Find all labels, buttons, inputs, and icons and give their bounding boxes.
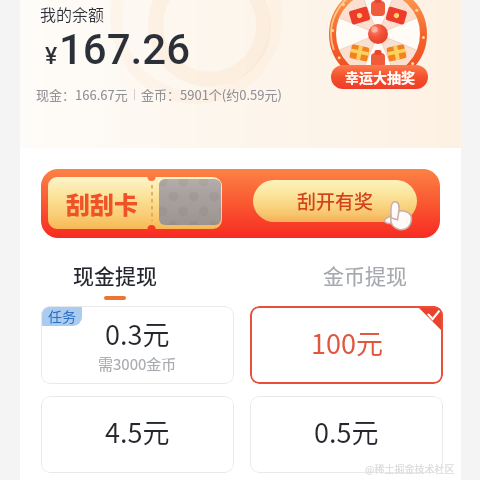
button[interactable]: 现金提现	[65, 260, 165, 300]
staticText: 刮开有奖	[297, 187, 374, 215]
button[interactable]: 刮开有奖	[253, 180, 417, 222]
other: 点击	[384, 200, 412, 230]
button[interactable]: 金币提现	[315, 260, 415, 296]
staticText: 任务	[48, 306, 76, 326]
button[interactable]: 100元	[250, 306, 443, 384]
button[interactable]: 0.5元	[250, 396, 443, 473]
button[interactable]: 刮刮卡	[41, 169, 440, 238]
staticText: 幸运大抽奖	[345, 67, 415, 87]
staticText: 金币：5901个(约0.59元)	[141, 85, 282, 104]
button[interactable]: 幸运大抽奖	[329, 0, 429, 89]
staticText: 现金提现	[73, 260, 157, 290]
staticText: 167.26	[59, 25, 191, 74]
staticText: 我的余额	[40, 2, 105, 25]
staticText: 现金：166.67元	[36, 85, 128, 104]
button[interactable]: 0.3元	[41, 306, 234, 384]
staticText: 金币提现	[323, 260, 407, 290]
staticText: 4.5元	[105, 412, 170, 451]
button[interactable]: 4.5元	[41, 396, 234, 473]
staticText: 需3000金币	[98, 353, 177, 375]
staticText: ¥	[45, 43, 58, 70]
staticText: 刮刮卡	[66, 186, 138, 221]
staticText: 100元	[311, 323, 383, 362]
staticText: 0.3元	[105, 314, 170, 353]
staticText: 0.5元	[314, 412, 379, 451]
staticText: @稀土掘金技术社区	[365, 461, 455, 475]
